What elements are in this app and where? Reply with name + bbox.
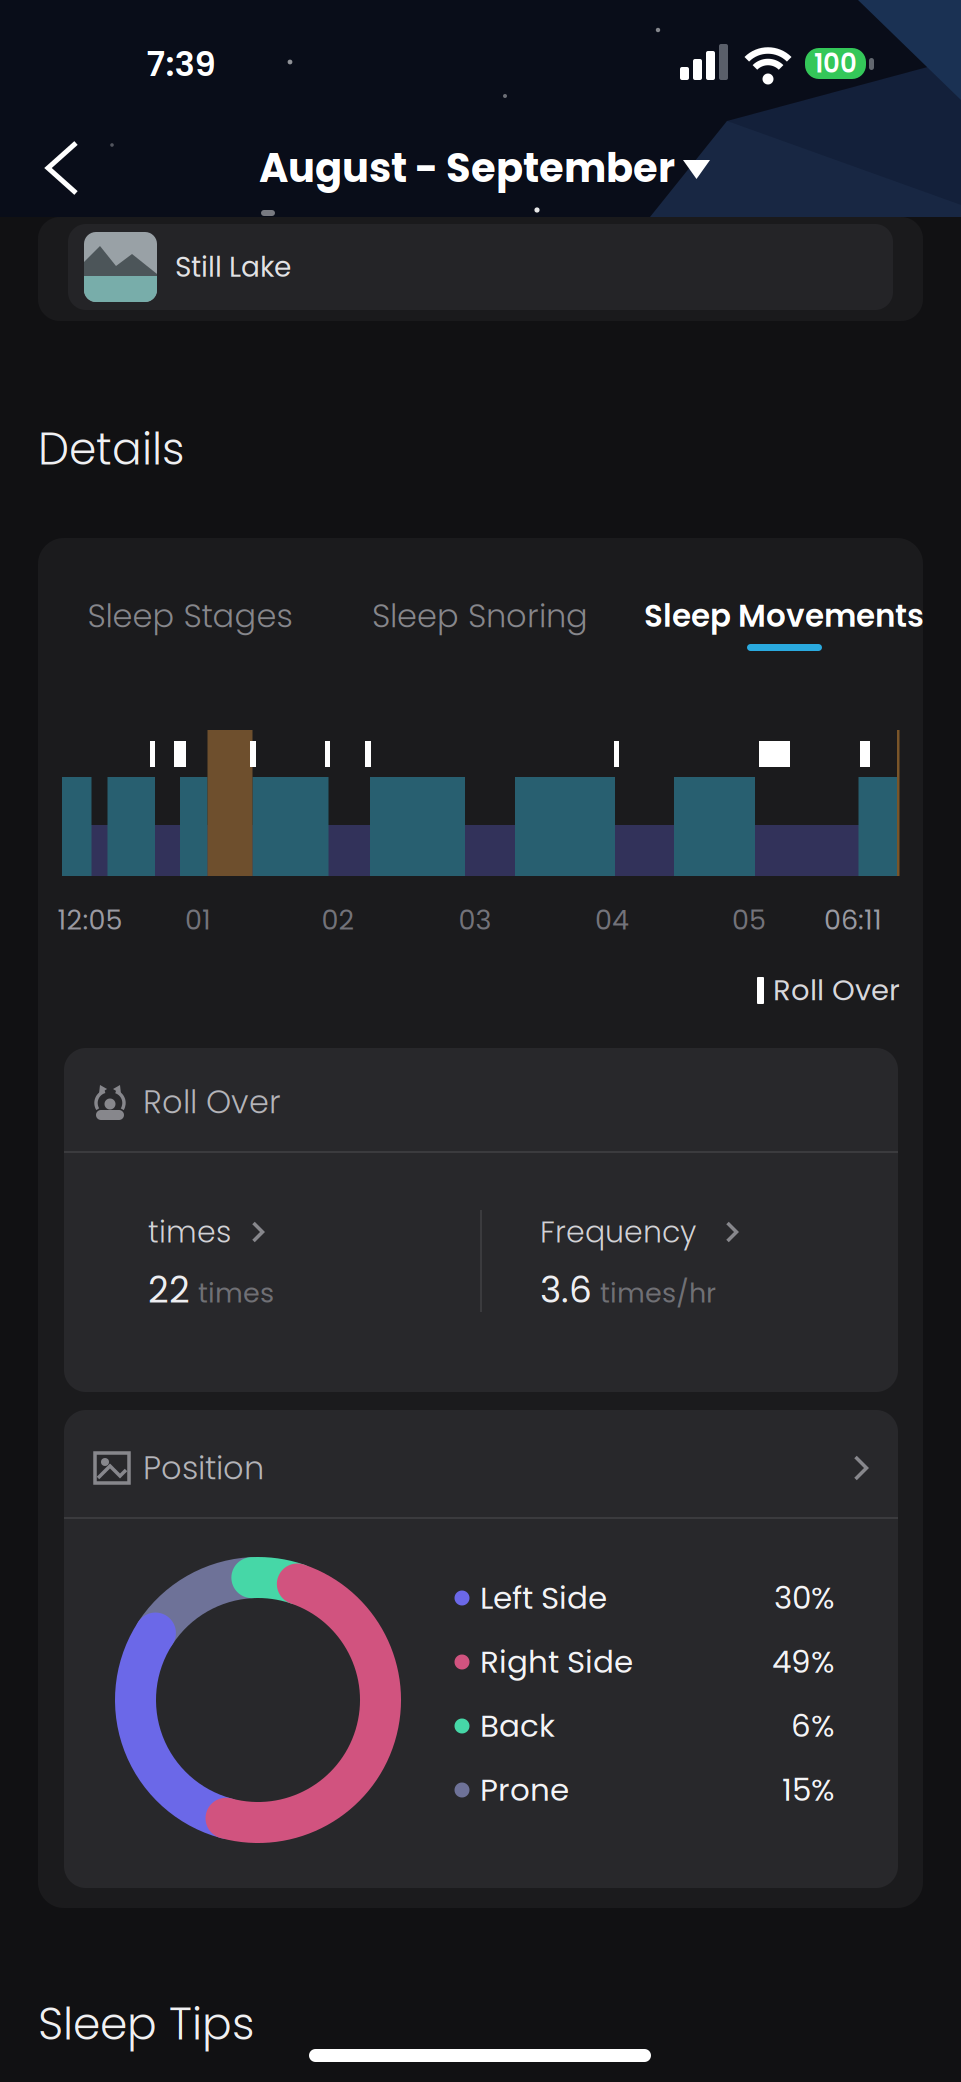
staticText: Sleep Movements — [644, 594, 924, 638]
staticText: August - September — [259, 140, 675, 196]
staticText: times — [198, 1274, 274, 1312]
staticText: Right Side — [480, 1640, 633, 1684]
staticText: 02 — [321, 901, 354, 939]
staticText: 04 — [595, 901, 629, 939]
staticText: 12:05 — [57, 901, 122, 939]
staticText: Left Side — [480, 1576, 607, 1620]
staticText: 100 — [814, 45, 857, 82]
staticText: 7:39 — [146, 40, 215, 88]
staticText: Sleep Stages — [87, 594, 292, 638]
staticText: 01 — [185, 901, 211, 939]
staticText: Prone — [480, 1768, 569, 1812]
staticText: 03 — [458, 901, 491, 939]
staticText: 22 — [148, 1265, 190, 1315]
staticText: 49% — [772, 1640, 835, 1684]
staticText: Position — [143, 1446, 264, 1490]
staticText: 05 — [732, 901, 766, 939]
staticText: Details — [38, 418, 184, 480]
staticText: Roll Over — [143, 1080, 281, 1124]
staticText: Back — [480, 1704, 555, 1748]
staticText: 30% — [774, 1576, 835, 1620]
staticText: Sleep Snoring — [372, 594, 588, 638]
staticText: Frequency — [540, 1211, 696, 1253]
staticText: Sleep Tips — [38, 1993, 254, 2055]
staticText: 06:11 — [824, 901, 882, 939]
staticText: times — [148, 1211, 231, 1253]
staticText: Still Lake — [175, 247, 291, 287]
staticText: 3.6 — [540, 1265, 592, 1315]
staticText: Roll Over — [773, 970, 900, 1010]
staticText: 6% — [791, 1704, 835, 1748]
staticText: 15% — [782, 1768, 835, 1812]
staticText: times/hr — [600, 1274, 716, 1312]
